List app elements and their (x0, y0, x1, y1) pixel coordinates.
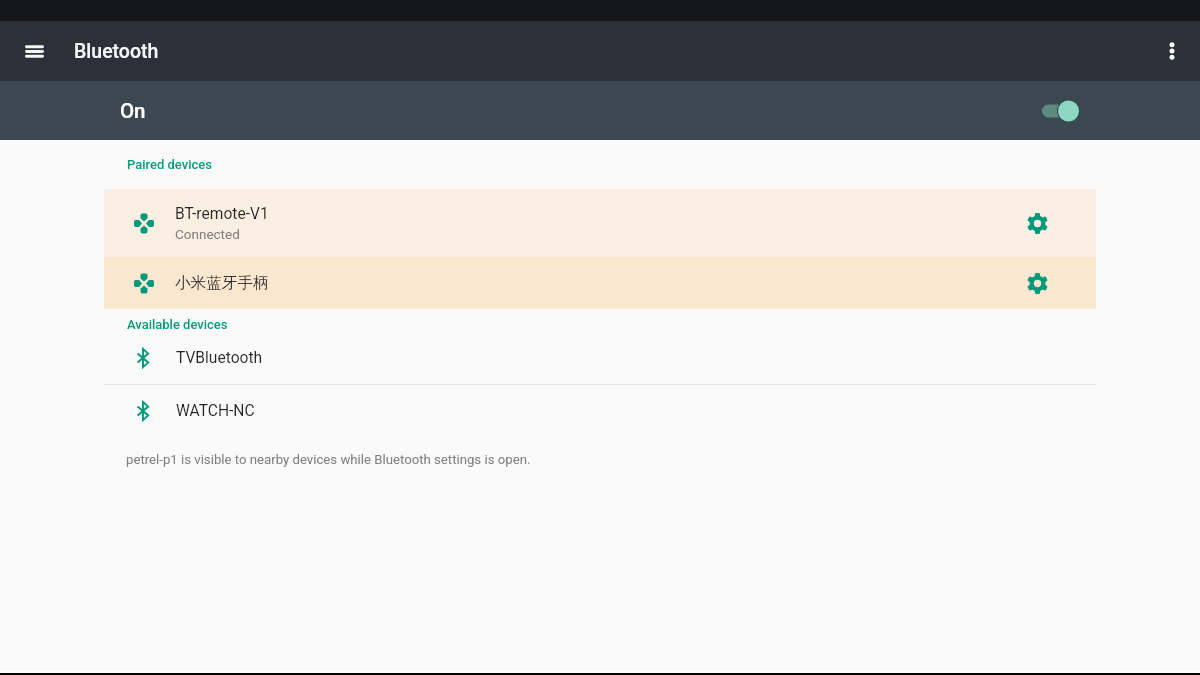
button[interactable]: WATCH-NC (0, 385, 1200, 437)
staticText: Paired devices (127, 157, 212, 172)
button[interactable]: Device settings (978, 257, 1096, 309)
button[interactable]: On (0, 81, 1200, 140)
button[interactable]: Bluetooth on off switch (1042, 94, 1094, 128)
button[interactable]: TVBluetooth (0, 332, 1200, 384)
staticText: 小米蓝牙手柄 (175, 273, 269, 293)
staticText: Bluetooth (74, 40, 159, 63)
button[interactable]: Device settings (978, 189, 1096, 257)
button[interactable]: More options (1150, 29, 1194, 73)
staticText: TVBluetooth (176, 349, 263, 367)
staticText: BT-remote-V1 (175, 205, 269, 223)
staticText: Connected (175, 226, 240, 242)
staticText: Available devices (127, 317, 228, 332)
button[interactable]: Open navigation drawer (12, 29, 56, 73)
staticText: WATCH-NC (176, 402, 255, 420)
button[interactable]: BT-remote-V1 (104, 189, 1096, 257)
staticText: On (120, 99, 146, 123)
button[interactable]: 小米蓝牙手柄 (104, 257, 1096, 309)
staticText: petrel-p1 is visible to nearby devices w… (126, 452, 531, 467)
